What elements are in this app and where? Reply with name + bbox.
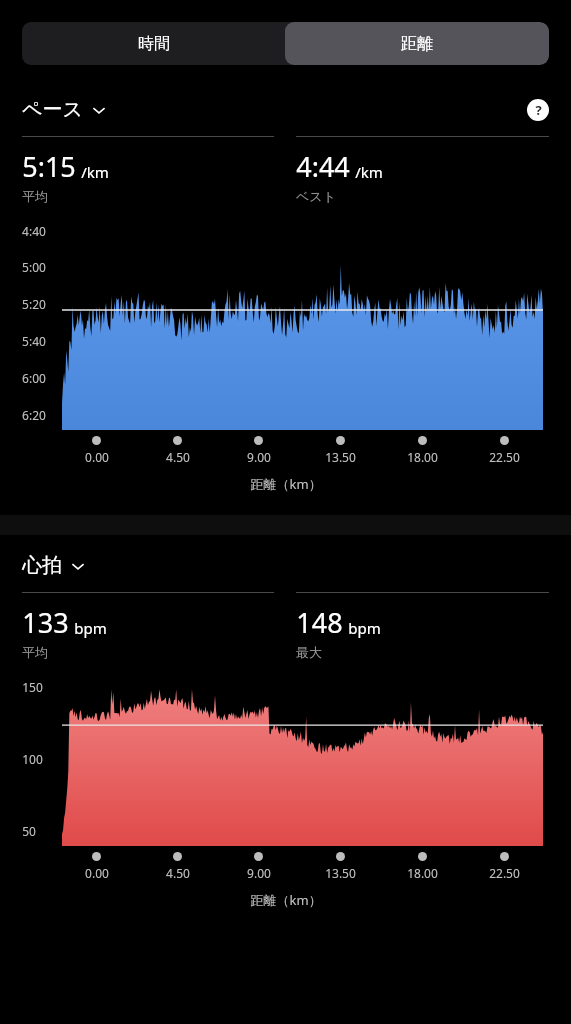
staticText: /km — [355, 162, 383, 182]
button[interactable]: ペース — [22, 97, 107, 122]
staticText: 4.50 — [166, 865, 190, 881]
staticText: 5:40 — [22, 333, 46, 349]
staticText: 100 — [22, 751, 43, 767]
button[interactable]: 距離 — [285, 22, 549, 65]
staticText: 13.50 — [325, 865, 356, 881]
staticText: 18.00 — [407, 449, 438, 465]
staticText: 0.00 — [85, 865, 109, 881]
staticText: 22.50 — [489, 449, 520, 465]
staticText: 18.00 — [407, 865, 438, 881]
staticText: 最大 — [296, 644, 322, 660]
staticText: 22.50 — [489, 865, 520, 881]
staticText: 50 — [22, 823, 36, 839]
staticText: 時間 — [138, 34, 170, 54]
staticText: 6:00 — [22, 370, 46, 386]
button[interactable]: 時間 — [22, 22, 285, 65]
staticText: 133 — [22, 604, 69, 641]
staticText: 4:44 — [296, 148, 350, 185]
staticText: 9.00 — [247, 865, 271, 881]
staticText: ベスト — [296, 188, 336, 204]
staticText: 心拍 — [22, 553, 62, 578]
staticText: 5:00 — [22, 259, 46, 275]
staticText: ペース — [22, 97, 83, 122]
staticText: 距離 — [401, 34, 433, 54]
staticText: bpm — [74, 618, 107, 638]
staticText: 9.00 — [247, 449, 271, 465]
staticText: bpm — [348, 618, 381, 638]
staticText: 4.50 — [166, 449, 190, 465]
staticText: 平均 — [22, 644, 48, 660]
staticText: 13.50 — [325, 449, 356, 465]
staticText: 平均 — [22, 188, 48, 204]
button[interactable]: 心拍 — [22, 553, 86, 578]
staticText: 距離（km） — [250, 891, 322, 909]
staticText: 6:20 — [22, 407, 46, 423]
staticText: ? — [535, 101, 542, 119]
staticText: /km — [81, 162, 109, 182]
button[interactable]: ヘルプ — [527, 99, 549, 121]
staticText: 0.00 — [85, 449, 109, 465]
staticText: 5:20 — [22, 296, 46, 312]
staticText: 148 — [296, 604, 343, 641]
staticText: 5:15 — [22, 148, 76, 185]
staticText: 150 — [22, 679, 43, 695]
staticText: 距離（km） — [250, 475, 322, 493]
staticText: 4:40 — [22, 223, 46, 239]
